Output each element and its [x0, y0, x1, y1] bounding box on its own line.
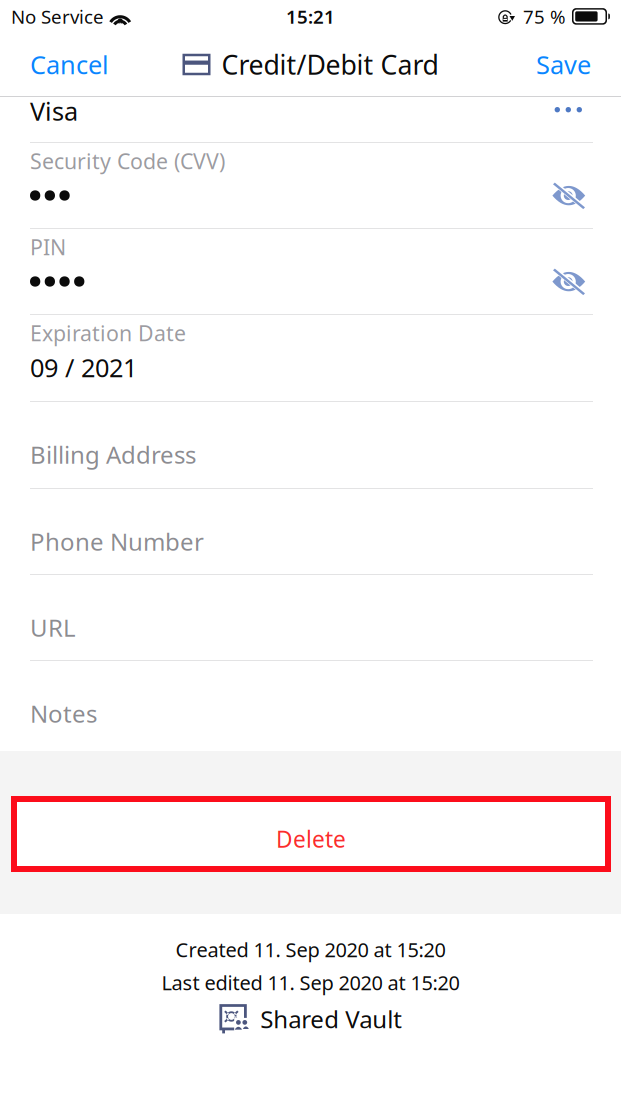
button[interactable]: Show security code	[550, 179, 588, 211]
button[interactable]: Delete	[0, 796, 621, 872]
staticText: Billing Address	[30, 439, 196, 470]
staticText: Visa	[30, 94, 78, 128]
staticText: Notes	[30, 698, 97, 729]
staticText: No Service	[11, 4, 104, 29]
staticText: Delete	[276, 824, 346, 854]
button[interactable]: More options	[547, 98, 590, 121]
staticText: Expiration Date	[30, 319, 186, 347]
staticText: Credit/Debit Card	[221, 47, 438, 82]
staticText: Security Code (CVV)	[30, 147, 225, 175]
button[interactable]: Save	[526, 39, 601, 90]
button[interactable]: Show PIN	[550, 265, 588, 297]
staticText: 09 / 2021	[30, 351, 137, 384]
staticText: 15:21	[286, 4, 335, 29]
staticText: PIN	[30, 233, 66, 261]
staticText: Last edited 11. Sep 2020 at 15:20	[161, 969, 459, 996]
staticText: Cancel	[30, 48, 109, 81]
staticText: Shared Vault	[260, 1003, 402, 1035]
staticText: URL	[30, 612, 76, 643]
button[interactable]: Cancel	[20, 39, 119, 90]
staticText: Phone Number	[30, 526, 204, 557]
staticText: Save	[536, 48, 591, 81]
staticText: Created 11. Sep 2020 at 15:20	[175, 936, 445, 963]
staticText: 75 %	[523, 4, 566, 29]
